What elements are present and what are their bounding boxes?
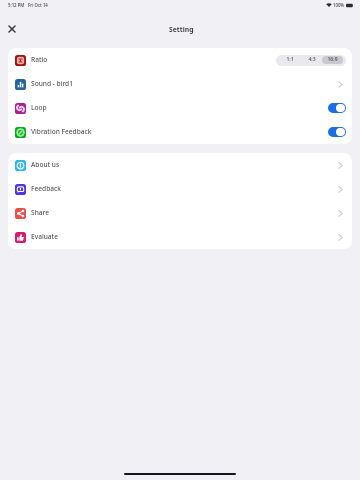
button[interactable]: Feedback bbox=[8, 177, 352, 201]
staticText: Loop bbox=[31, 103, 47, 112]
staticText: Sound - bird1 bbox=[31, 79, 73, 88]
staticText: 5:12 PM bbox=[8, 2, 25, 8]
staticText: 100% bbox=[333, 2, 345, 8]
button[interactable]: About us bbox=[8, 153, 352, 177]
staticText: Ratio bbox=[31, 55, 48, 64]
staticText: Vibration Feedback bbox=[31, 127, 92, 136]
button[interactable]: Sound - bird1 bbox=[8, 72, 352, 96]
button[interactable]: Evaluate bbox=[8, 225, 352, 249]
button[interactable]: Toggle bbox=[328, 127, 346, 137]
staticText: Evaluate bbox=[31, 232, 58, 241]
button[interactable]: Close bbox=[3, 20, 20, 37]
button[interactable]: Loop bbox=[8, 96, 352, 120]
staticText: Feedback bbox=[31, 184, 61, 193]
staticText: Setting bbox=[169, 25, 194, 34]
staticText: About us bbox=[31, 160, 60, 169]
staticText: Fri Oct 14 bbox=[28, 2, 48, 8]
button[interactable]: Ratio bbox=[8, 48, 352, 72]
staticText: 4:3 bbox=[308, 56, 316, 63]
staticText: 1:1 bbox=[286, 56, 294, 63]
button[interactable]: 16:9 bbox=[322, 56, 343, 64]
staticText: Share bbox=[31, 208, 49, 217]
button[interactable]: 4:3 bbox=[301, 56, 322, 64]
button[interactable]: Share bbox=[8, 201, 352, 225]
staticText: 16:9 bbox=[327, 56, 338, 63]
button[interactable]: Vibration Feedback bbox=[8, 120, 352, 144]
button[interactable]: Toggle bbox=[328, 103, 346, 113]
button[interactable]: 1:1 bbox=[279, 56, 301, 64]
